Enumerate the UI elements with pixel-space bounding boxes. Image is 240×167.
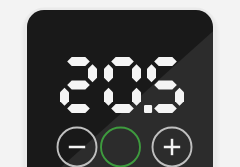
button[interactable]: Decrease temperature <box>56 126 99 167</box>
button[interactable]: Power <box>99 126 142 167</box>
button[interactable]: Increase temperature <box>151 126 194 167</box>
